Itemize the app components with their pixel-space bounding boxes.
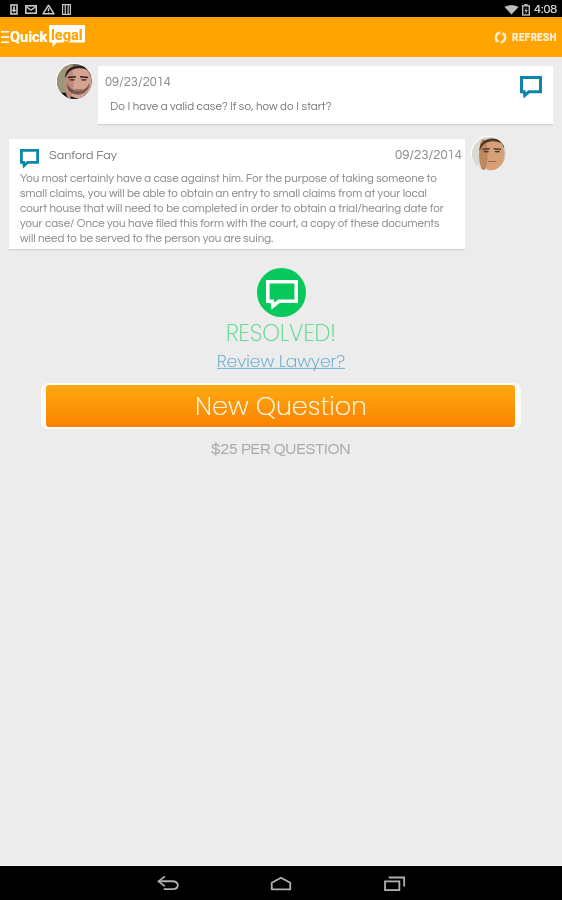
button[interactable]: 09/23/2014 xyxy=(98,66,553,124)
staticText: RESOLVED! xyxy=(226,317,337,348)
staticText: Quick xyxy=(10,29,48,46)
button[interactable]: Sanford Fay xyxy=(9,139,465,249)
staticText: legal xyxy=(51,27,83,44)
staticText: Review Lawyer? xyxy=(217,349,345,373)
staticText: 09/23/2014 xyxy=(105,76,171,89)
button[interactable]: Resolved xyxy=(257,268,306,317)
staticText: 09/23/2014 xyxy=(395,148,462,161)
staticText: REFRESH xyxy=(512,32,557,44)
staticText: $25 PER QUESTION xyxy=(211,441,351,457)
staticText: 4:08 xyxy=(534,3,558,16)
staticText: New Question xyxy=(195,388,367,424)
button[interactable]: Recents xyxy=(363,866,425,900)
button[interactable]: Back xyxy=(137,866,199,900)
button[interactable]: Refresh xyxy=(493,30,557,45)
staticText: You most certainly have a case against h… xyxy=(20,173,456,244)
button[interactable]: New Question xyxy=(46,385,515,427)
staticText: Do I have a valid case? If so, how do I … xyxy=(110,100,332,112)
button[interactable]: Review Lawyer? xyxy=(217,349,345,373)
staticText: Sanford Fay xyxy=(49,149,117,162)
button[interactable]: Menu xyxy=(0,17,12,57)
button[interactable]: Home xyxy=(250,866,312,900)
